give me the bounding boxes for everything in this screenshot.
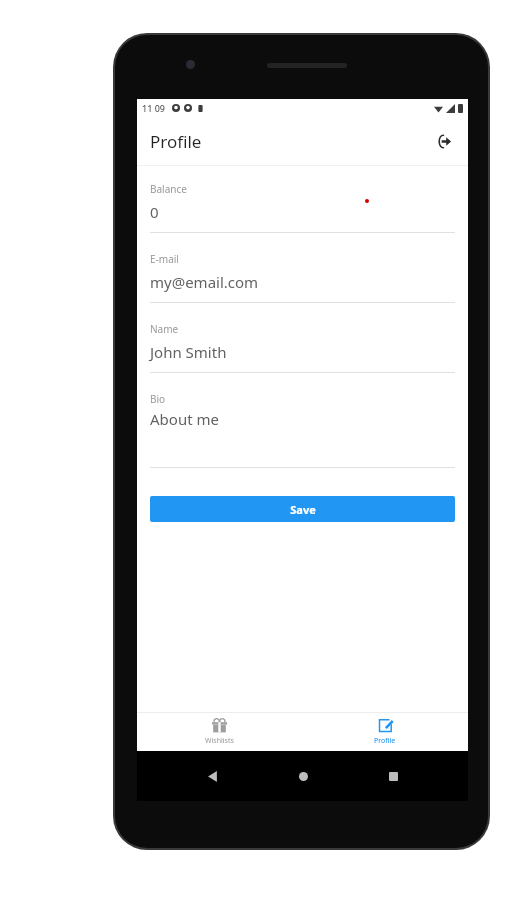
staticText: 11 09 (142, 102, 165, 114)
staticText: my@email.com (150, 272, 259, 292)
button[interactable]: E-mail (150, 252, 455, 303)
staticText: Profile (150, 130, 202, 153)
button[interactable]: Balance (150, 182, 455, 233)
button[interactable]: Home (288, 761, 318, 791)
button[interactable]: Bio (150, 392, 455, 468)
staticText: Wishlists (205, 736, 234, 746)
staticText: E-mail (150, 252, 179, 266)
button[interactable]: Save (150, 496, 455, 522)
button[interactable]: Name (150, 322, 455, 373)
button[interactable]: Wishlists (137, 713, 302, 751)
button[interactable]: Log out (428, 126, 458, 156)
button[interactable]: Back (197, 761, 227, 791)
staticText: About me (150, 409, 219, 429)
staticText: Profile (374, 736, 396, 746)
staticText: 0 (150, 202, 159, 222)
staticText: Name (150, 322, 179, 336)
button[interactable]: Profile (302, 713, 468, 751)
button[interactable]: Recent apps (378, 761, 408, 791)
staticText: Save (290, 502, 316, 517)
staticText: Balance (150, 182, 187, 196)
staticText: John Smith (150, 342, 227, 362)
staticText: Bio (150, 392, 166, 406)
